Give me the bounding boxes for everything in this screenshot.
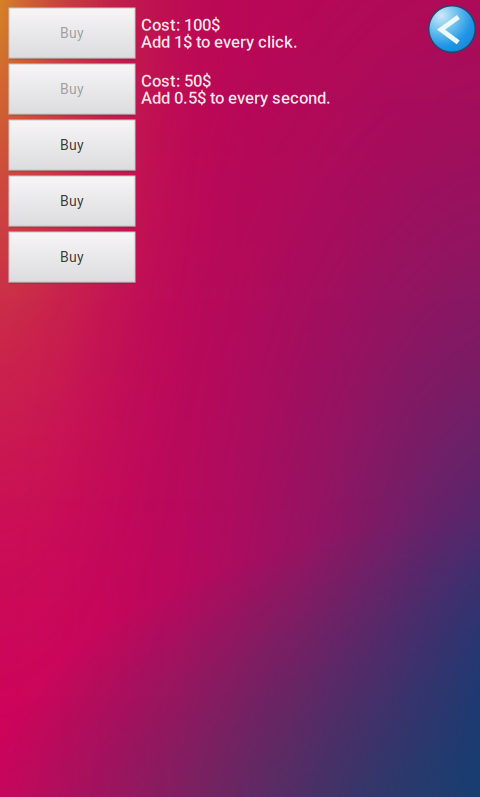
button[interactable]: Buy <box>9 8 135 58</box>
staticText: Cost: 50$ <box>141 71 211 91</box>
staticText: Buy <box>60 25 84 41</box>
button[interactable]: Buy <box>9 64 135 114</box>
button[interactable]: Buy <box>9 120 135 170</box>
staticText: Buy <box>60 249 84 265</box>
button[interactable]: Back <box>428 5 476 53</box>
staticText: Add 1$ to every click. <box>141 32 298 52</box>
button[interactable]: Buy <box>9 176 135 226</box>
staticText: Add 0.5$ to every second. <box>141 88 331 108</box>
staticText: Buy <box>60 137 84 153</box>
staticText: Cost: 100$ <box>141 15 220 35</box>
staticText: Buy <box>60 81 84 97</box>
button[interactable]: Buy <box>9 232 135 282</box>
staticText: Buy <box>60 193 84 209</box>
